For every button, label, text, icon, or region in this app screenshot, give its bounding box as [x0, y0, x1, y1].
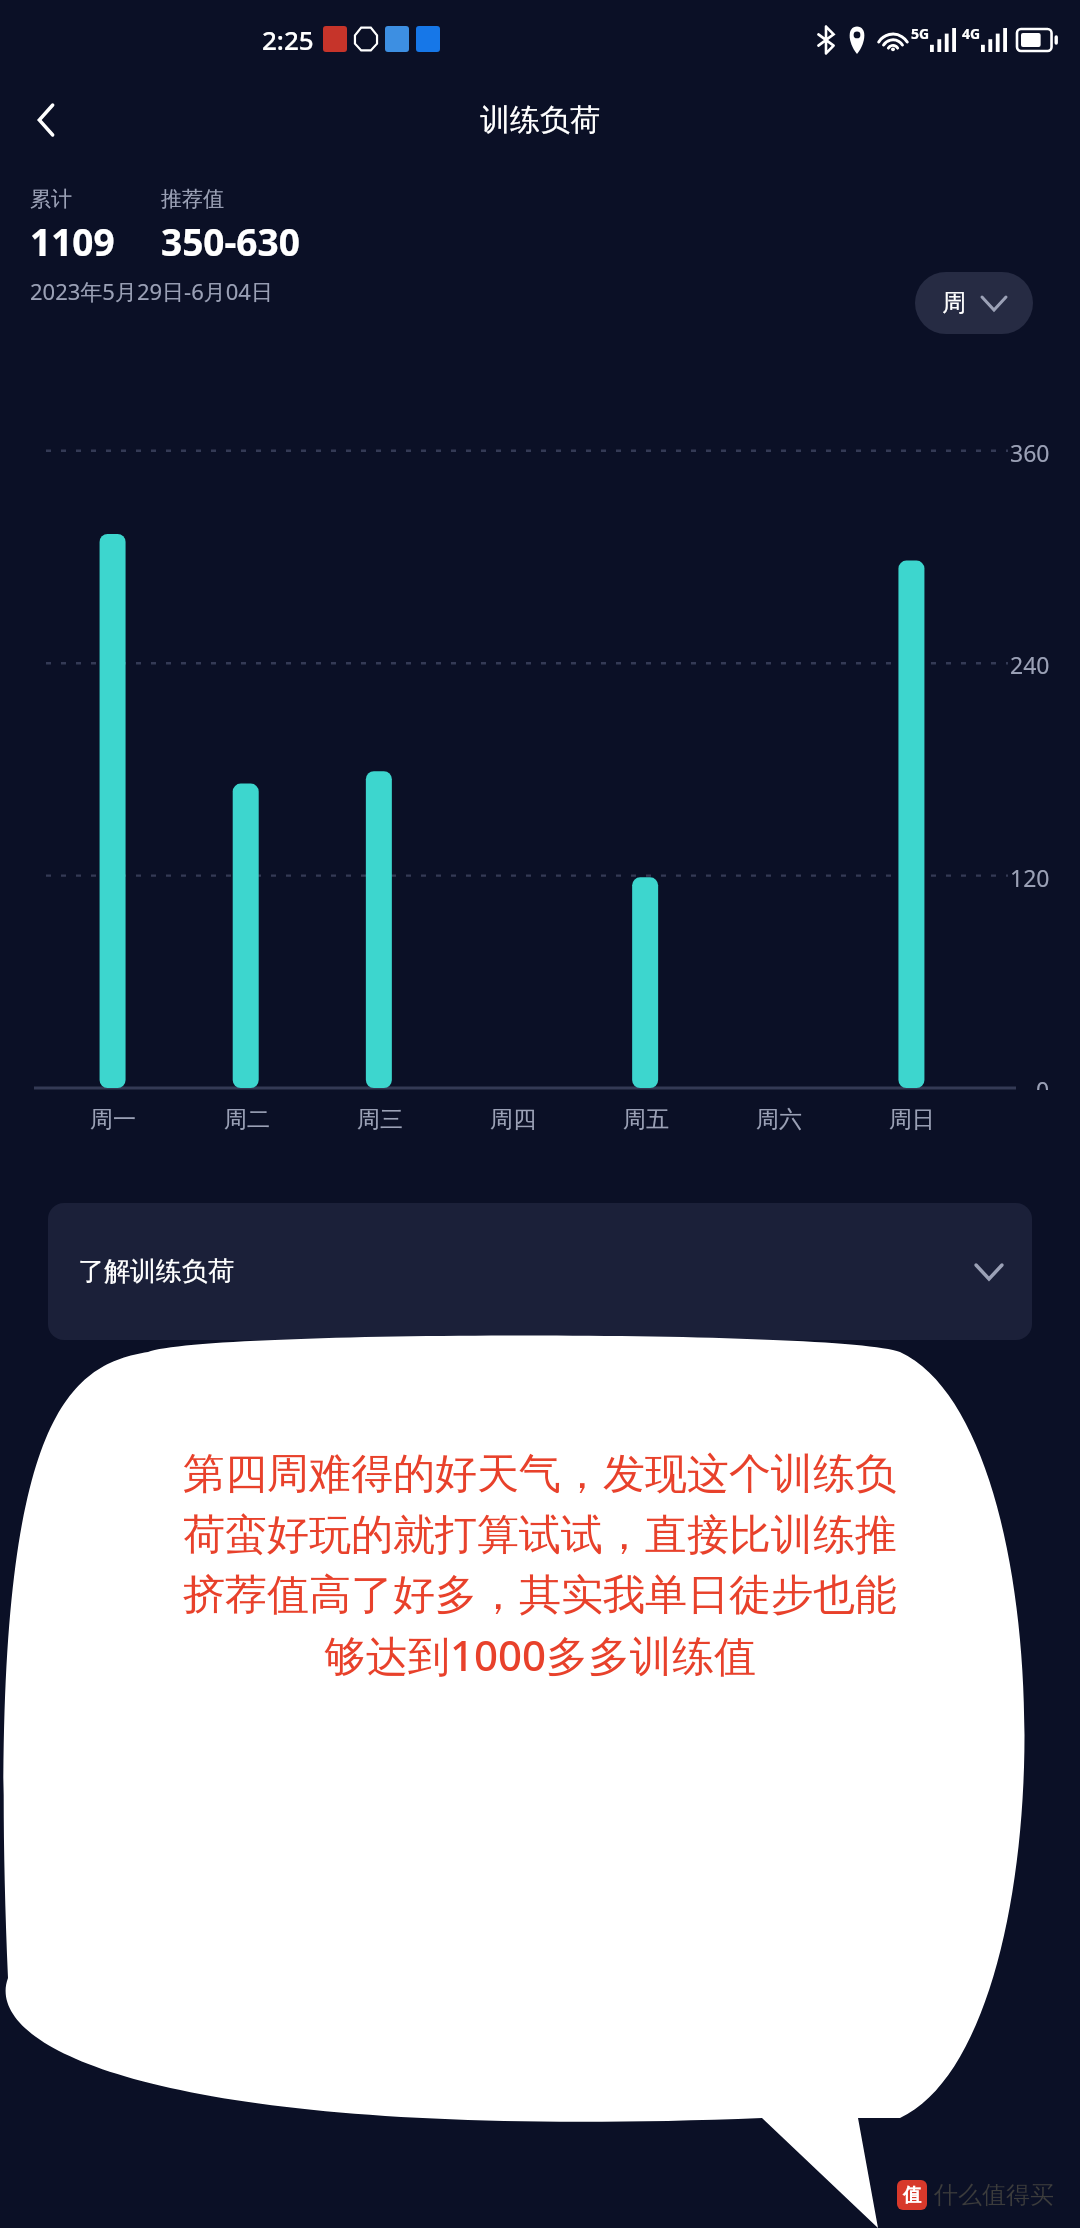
- staticText: 了解训练负荷: [78, 1255, 234, 1288]
- staticText: 4G: [962, 24, 981, 43]
- staticText: 值: [903, 2184, 921, 2207]
- staticText: 周三: [357, 1105, 403, 1134]
- staticText: 推荐值: [161, 186, 224, 212]
- staticText: 第四周难得的好天气，发现这个训练负荷蛮好玩的就打算试试，直接比训练推挤荐值高了好…: [168, 1448, 912, 1684]
- staticText: 训练负荷: [480, 101, 600, 139]
- staticText: 240: [1010, 649, 1050, 680]
- staticText: 累计: [30, 186, 72, 212]
- button[interactable]: Back: [14, 88, 78, 152]
- staticText: 周五: [623, 1105, 669, 1134]
- staticText: 周二: [224, 1105, 270, 1134]
- staticText: 0: [1036, 1074, 1050, 1090]
- staticText: 2:25: [262, 22, 314, 57]
- button[interactable]: 周: [915, 272, 1033, 334]
- staticText: 360: [1010, 437, 1050, 468]
- button[interactable]: 了解训练负荷: [48, 1203, 1032, 1340]
- staticText: 350-630: [161, 216, 300, 266]
- staticText: 周四: [490, 1105, 536, 1134]
- staticText: 周日: [889, 1105, 935, 1134]
- staticText: 周六: [756, 1105, 802, 1134]
- staticText: 周一: [90, 1105, 136, 1134]
- staticText: 什么值得买: [934, 2180, 1054, 2210]
- staticText: 120: [1010, 862, 1050, 893]
- staticText: 周: [942, 288, 966, 318]
- staticText: 1109: [30, 216, 115, 266]
- staticText: 5G: [911, 24, 930, 43]
- staticText: 2023年5月29日-6月04日: [30, 276, 273, 306]
